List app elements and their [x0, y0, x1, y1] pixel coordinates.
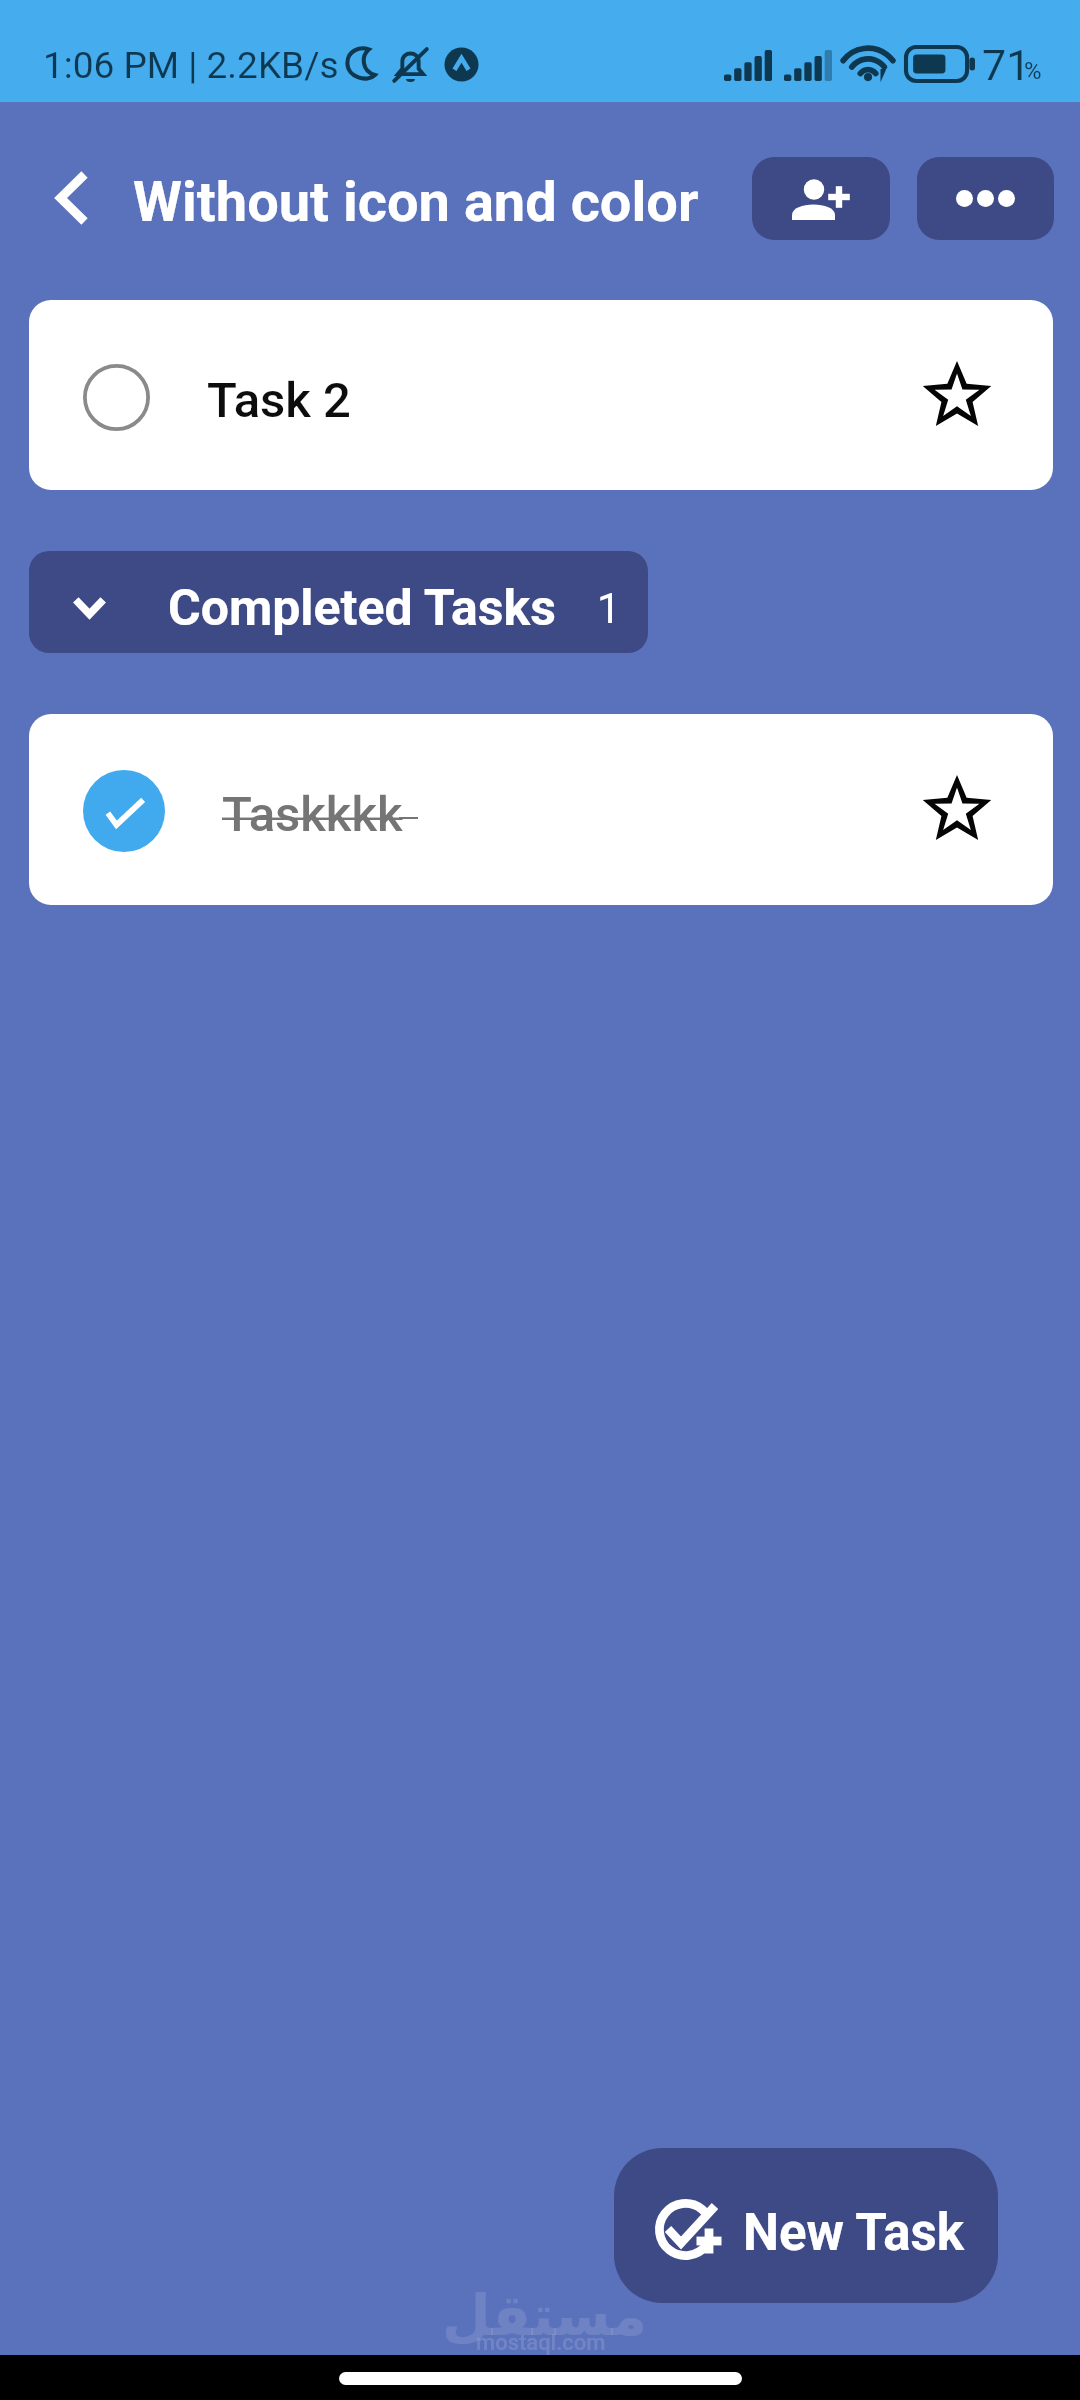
staticText: 1 — [597, 584, 621, 633]
button[interactable]: Mark complete — [29, 300, 1053, 490]
staticText: Completed Tasks — [168, 579, 556, 638]
staticText: % — [1024, 57, 1042, 85]
staticText: New Task — [743, 2203, 964, 2263]
button[interactable]: Add person — [752, 157, 890, 240]
staticText: mostaql.com — [476, 2330, 606, 2356]
staticText: Taskkkk — [222, 786, 403, 843]
staticText: 1:06 PM | 2.2KB/s — [43, 44, 339, 87]
button[interactable]: Mark incomplete — [29, 714, 1053, 905]
button[interactable]: Mark incomplete — [83, 770, 165, 852]
staticText: Task 2 — [207, 372, 351, 429]
button[interactable]: New Task — [614, 2148, 998, 2303]
button[interactable]: Star task — [907, 759, 1007, 859]
button[interactable]: Star task — [907, 345, 1007, 445]
staticText: 71 — [982, 40, 1031, 90]
staticText: Without icon and color — [133, 169, 699, 235]
button[interactable]: More options — [917, 157, 1054, 240]
button[interactable]: Completed Tasks — [29, 551, 648, 653]
button[interactable]: Mark complete — [83, 364, 150, 431]
staticText: مستقل — [442, 2283, 647, 2348]
button[interactable]: Back — [27, 153, 117, 243]
